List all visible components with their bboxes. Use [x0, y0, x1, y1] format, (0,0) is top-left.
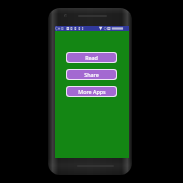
staticText: More Apps [78, 88, 106, 95]
button[interactable]: Read [66, 52, 117, 63]
button[interactable]: Share [66, 69, 117, 80]
staticText: Share [84, 71, 99, 78]
other: System status bar [55, 26, 129, 31]
staticText: Read [85, 54, 98, 61]
button[interactable]: More Apps [66, 86, 117, 97]
